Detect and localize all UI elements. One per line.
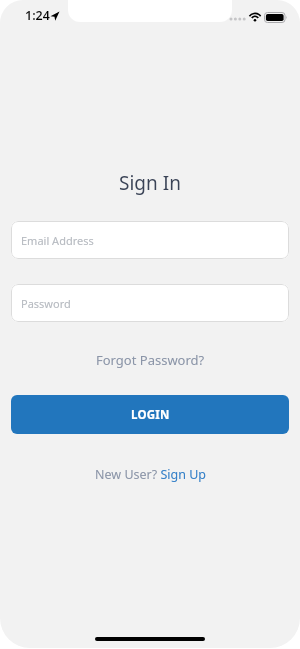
staticText: 1:24 xyxy=(25,7,50,24)
staticText: Forgot Password? xyxy=(96,351,205,369)
button[interactable]: Forgot Password? xyxy=(92,347,209,373)
staticText: Email Address xyxy=(21,233,94,248)
button[interactable]: LOGIN xyxy=(11,395,289,434)
button[interactable]: Password xyxy=(11,284,289,322)
button[interactable]: New User? Sign Up xyxy=(91,462,210,487)
staticText: LOGIN xyxy=(131,407,170,423)
staticText: Sign In xyxy=(119,170,181,196)
staticText: New User? Sign Up xyxy=(95,466,206,483)
staticText: Password xyxy=(21,296,71,311)
button[interactable]: Email Address xyxy=(11,221,289,259)
